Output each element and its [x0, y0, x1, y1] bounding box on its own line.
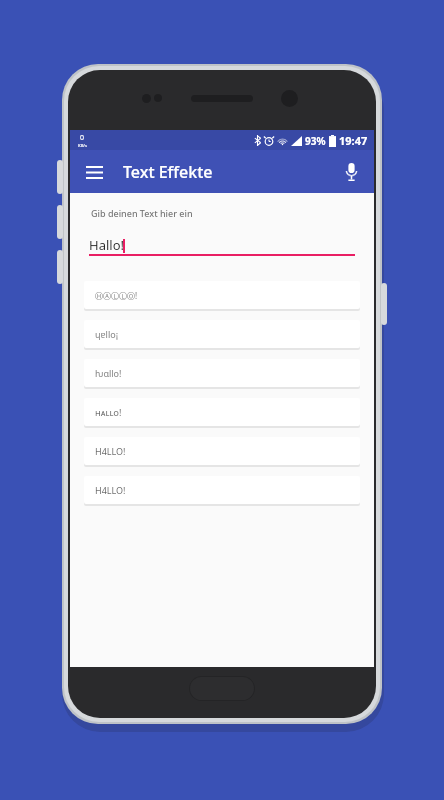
button[interactable]: H4LLO!	[84, 476, 360, 504]
staticText: Hallo!	[89, 236, 124, 254]
button[interactable]: Open navigation drawer	[76, 154, 112, 190]
staticText: 19:47	[339, 133, 368, 148]
staticText: 0	[80, 133, 85, 143]
button[interactable]: ⒽⒶⓁⓁⓄ!	[84, 281, 360, 309]
staticText: H4LLO!	[95, 445, 126, 457]
button[interactable]: ɥɐllo¡	[84, 320, 360, 348]
staticText: H4LLO!	[95, 484, 126, 496]
button[interactable]: Hallo!	[89, 232, 355, 254]
staticText: ⒽⒶⓁⓁⓄ!	[95, 290, 138, 301]
staticText: Text Effekte	[123, 161, 213, 183]
staticText: ɥɐllo¡	[95, 328, 119, 340]
staticText: Gib deinen Text hier ein	[91, 207, 193, 219]
staticText: KB/s	[78, 143, 87, 148]
staticText: ƕɑllo!	[95, 367, 122, 379]
staticText: ʜᴀʟʟᴏ!	[95, 406, 122, 418]
button[interactable]: ƕɑllo!	[84, 359, 360, 387]
button[interactable]: H4LLO!	[84, 437, 360, 465]
button[interactable]: ʜᴀʟʟᴏ!	[84, 398, 360, 426]
staticText: 93%	[305, 134, 326, 148]
button[interactable]: Voice input	[333, 154, 369, 190]
